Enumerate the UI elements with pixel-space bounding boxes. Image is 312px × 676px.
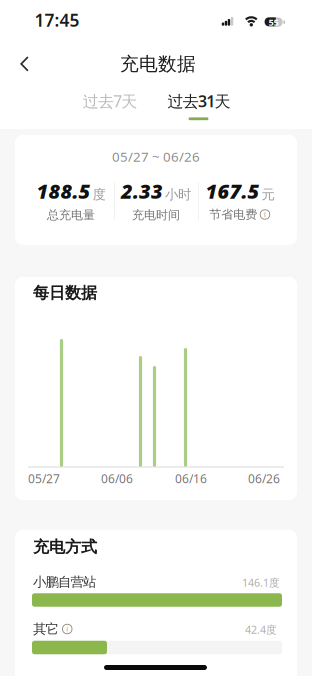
- staticText: i: [66, 625, 68, 633]
- staticText: 2.33: [121, 178, 163, 204]
- staticText: 充电方式: [33, 537, 97, 557]
- staticText: 167.5: [205, 178, 259, 204]
- staticText: 其它: [33, 621, 58, 637]
- staticText: 小鹏自营站: [33, 574, 96, 590]
- staticText: i: [264, 210, 266, 219]
- staticText: 06/16: [175, 470, 207, 486]
- staticText: 06/06: [101, 470, 133, 486]
- staticText: 188.5: [36, 178, 90, 204]
- staticText: 05/27 ~ 06/26: [112, 148, 200, 165]
- staticText: 146.1度: [242, 575, 280, 590]
- staticText: 42.4度: [245, 622, 277, 637]
- staticText: 充电数据: [120, 52, 196, 75]
- staticText: 小时: [165, 186, 191, 203]
- button[interactable]: i: [62, 624, 72, 634]
- button[interactable]: [4, 44, 44, 84]
- button[interactable]: 过去7天: [70, 86, 150, 116]
- staticText: 过去7天: [83, 90, 137, 112]
- staticText: 每日数据: [33, 283, 97, 303]
- staticText: 17:45: [34, 8, 79, 31]
- staticText: 元: [261, 186, 274, 203]
- button[interactable]: 过去31天: [157, 86, 241, 116]
- staticText: 55: [268, 16, 278, 28]
- staticText: 节省电费: [209, 207, 257, 222]
- staticText: 06/26: [248, 470, 280, 486]
- staticText: 充电时间: [132, 208, 180, 222]
- staticText: 度: [92, 186, 105, 203]
- staticText: 过去31天: [168, 90, 230, 112]
- staticText: 05/27: [28, 470, 60, 486]
- staticText: 总充电量: [47, 208, 95, 222]
- button[interactable]: i: [260, 210, 270, 219]
